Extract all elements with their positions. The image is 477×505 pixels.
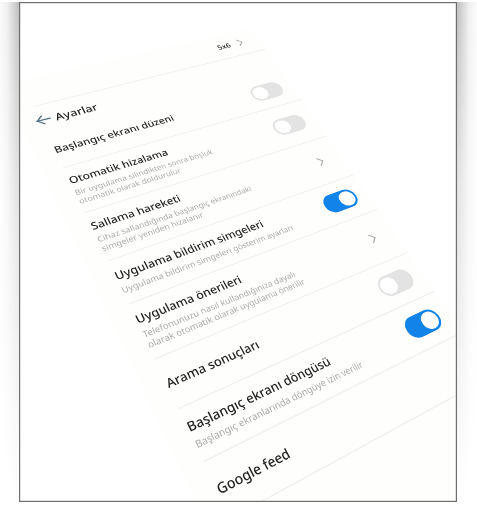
staticText: Başlangıç ekranlarında döngüye izin veri…: [193, 358, 365, 451]
staticText: 5x6: [215, 41, 233, 52]
button[interactable]: Başlangıç ekranı düzeni: [26, 71, 301, 174]
staticText: Uygulama bildirim simgeleri: [112, 217, 266, 283]
staticText: Otomatik hizalama: [66, 146, 171, 186]
button[interactable]: Başlangıç ekranı döngüsü: [157, 291, 457, 473]
button[interactable]: Open: [356, 224, 390, 253]
button[interactable]: Sallama hareketi: [64, 136, 354, 269]
staticText: Başlangıç ekranı döngüsü: [183, 353, 334, 435]
button[interactable]: 5x6: [23, 33, 254, 102]
button[interactable]: Off: [247, 80, 287, 103]
staticText: Ayarlar: [52, 100, 100, 123]
staticText: Cihaz sallandığında başlangıç ekranındak…: [95, 183, 259, 253]
button[interactable]: Uygulama bildirim simgeleri: [87, 175, 378, 313]
button[interactable]: Off: [373, 266, 418, 299]
staticText: Telefonunuzu nasıl kullandığınıza dayalı…: [140, 267, 307, 350]
button[interactable]: On: [319, 187, 362, 215]
button[interactable]: Arama sonuçları: [133, 253, 435, 419]
button[interactable]: Open: [305, 149, 337, 174]
button[interactable]: Back: [27, 108, 59, 132]
staticText: Arama sonuçları: [163, 336, 262, 391]
staticText: Sallama hareketi: [88, 191, 183, 233]
staticText: Uygulama bildirim simgeleri gösterim aya…: [119, 222, 295, 295]
staticText: Bir uygulama silindikten sonra boşluk ot…: [73, 147, 219, 206]
button[interactable]: On: [400, 306, 446, 341]
button[interactable]: Uygulama önerileri: [107, 209, 408, 369]
staticText: Uygulama önerileri: [132, 272, 244, 327]
staticText: Başlangıç ekranı düzeni: [52, 112, 176, 155]
button[interactable]: Open: [225, 33, 254, 52]
button[interactable]: Off: [269, 113, 310, 137]
staticText: Google feed: [213, 444, 293, 498]
button[interactable]: Otomatik hizalama: [43, 100, 327, 220]
button[interactable]: Google feed: [182, 332, 457, 502]
